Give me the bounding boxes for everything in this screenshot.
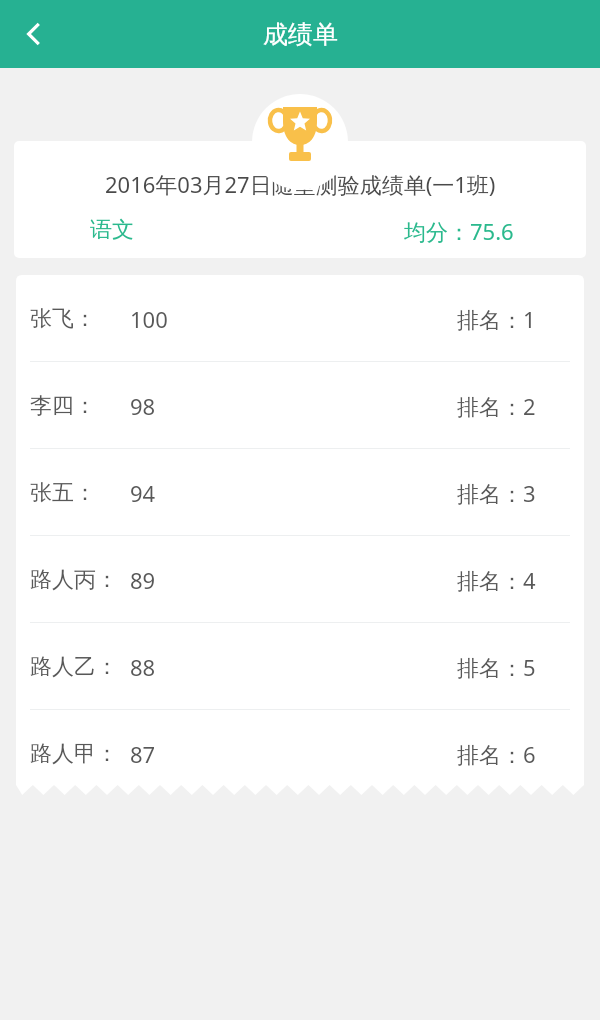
staticText: 路人甲： — [30, 740, 118, 768]
staticText: 排名：6 — [457, 739, 536, 769]
button[interactable]: 2016年03月27日随堂测验成绩单(一1班) — [14, 141, 586, 258]
button[interactable]: 李四： — [16, 362, 584, 449]
button[interactable]: Back — [0, 0, 68, 68]
button[interactable]: 路人甲： — [16, 710, 584, 797]
staticText: 路人乙： — [30, 653, 118, 681]
staticText: 98 — [130, 391, 156, 421]
staticText: 87 — [130, 739, 156, 769]
staticText: 张飞： — [30, 305, 96, 333]
staticText: 排名：5 — [457, 652, 536, 682]
staticText: 成绩单 — [263, 19, 338, 50]
staticText: 张五： — [30, 479, 96, 507]
staticText: 排名：4 — [457, 565, 536, 595]
button[interactable]: 路人丙： — [16, 536, 584, 623]
staticText: 语文 — [90, 216, 134, 244]
staticText: 排名：1 — [457, 304, 536, 334]
staticText: 88 — [130, 652, 156, 682]
staticText: 李四： — [30, 392, 96, 420]
button[interactable]: 张五： — [16, 449, 584, 536]
staticText: 排名：2 — [457, 391, 536, 421]
staticText: 2016年03月27日随堂测验成绩单(一1班) — [105, 169, 496, 199]
button[interactable]: 路人乙： — [16, 623, 584, 710]
staticText: 89 — [130, 565, 156, 595]
staticText: 均分：75.6 — [404, 216, 514, 246]
button[interactable]: 张飞： — [16, 275, 584, 362]
staticText: 94 — [130, 478, 156, 508]
staticText: 排名：3 — [457, 478, 536, 508]
staticText: 100 — [130, 304, 168, 334]
staticText: 路人丙： — [30, 566, 118, 594]
